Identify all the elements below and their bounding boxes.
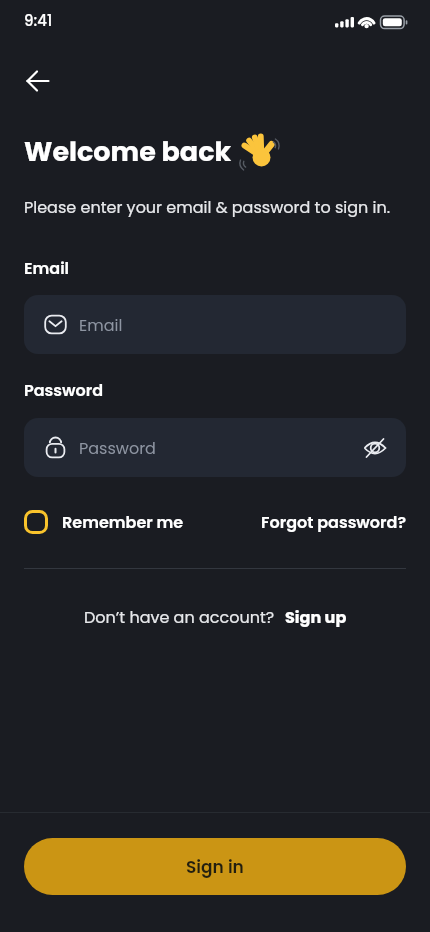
staticText: Sign in	[186, 855, 244, 879]
button[interactable]	[14, 57, 62, 105]
button[interactable]: Sign in	[24, 838, 406, 895]
button[interactable]: Remember me	[24, 510, 184, 534]
staticText: Email	[79, 314, 123, 336]
button[interactable]: Email	[24, 295, 406, 354]
staticText: 9:41	[24, 10, 53, 31]
staticText: Password	[79, 437, 156, 459]
staticText: Please enter your email & password to si…	[24, 196, 391, 218]
button[interactable]: Password	[24, 418, 406, 477]
staticText: Welcome back	[24, 133, 232, 171]
staticText: Don’t have an account?	[84, 606, 275, 628]
staticText: Remember me	[62, 511, 184, 533]
button[interactable]: Forgot password?	[261, 511, 406, 533]
staticText: Password	[24, 379, 104, 401]
button[interactable]: Sign up	[285, 606, 347, 628]
button[interactable]	[344, 420, 406, 476]
staticText: Email	[24, 257, 70, 279]
